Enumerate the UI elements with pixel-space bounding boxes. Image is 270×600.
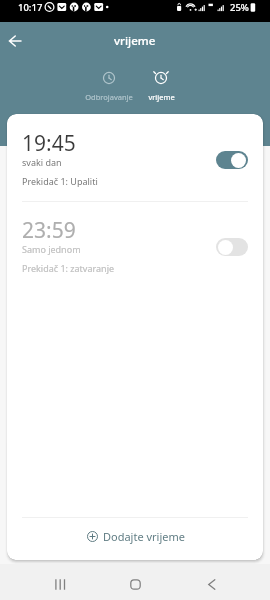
staticText: svaki dan xyxy=(22,156,62,168)
button[interactable]: Dodajte vrijeme xyxy=(8,515,263,558)
staticText: Odbrojavanje xyxy=(85,92,133,102)
button[interactable]: Alarm off xyxy=(216,238,248,256)
staticText: Prekidač 1: Upaliti xyxy=(22,175,98,187)
staticText: Prekidač 1: zatvaranje xyxy=(22,262,115,274)
staticText: 23:59 xyxy=(22,216,76,245)
button[interactable]: Recents xyxy=(38,566,82,600)
staticText: vrijeme xyxy=(148,92,175,102)
button[interactable]: Odbrojavanje xyxy=(83,58,135,102)
staticText: 19:45 xyxy=(22,129,76,158)
button[interactable]: Back xyxy=(189,566,233,600)
staticText: Dodajte vrijeme xyxy=(103,529,185,544)
button[interactable]: Home xyxy=(113,566,157,600)
button[interactable]: Back xyxy=(3,29,26,52)
button[interactable]: 23:59 xyxy=(7,201,263,288)
staticText: 25% xyxy=(230,1,249,14)
staticText: vrijeme xyxy=(114,33,156,49)
staticText: Samo jednom xyxy=(22,243,81,255)
button[interactable]: vrijeme xyxy=(135,58,187,102)
staticText: 10:17 xyxy=(18,1,43,14)
button[interactable]: Alarm on xyxy=(216,151,248,169)
button[interactable]: 19:45 xyxy=(7,114,263,201)
